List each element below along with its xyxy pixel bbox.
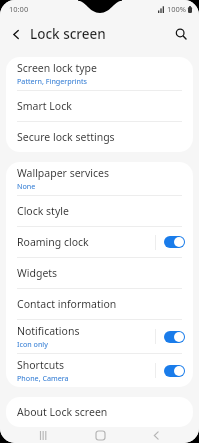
button[interactable]: Roaming clock bbox=[6, 227, 193, 257]
staticText: Widgets bbox=[17, 266, 58, 280]
button[interactable]: Search bbox=[169, 22, 193, 46]
button[interactable]: Wallpaper services bbox=[6, 162, 193, 195]
button[interactable]: Secure lock settings bbox=[6, 122, 193, 152]
button[interactable]: Back bbox=[143, 427, 169, 443]
staticText: Clock style bbox=[17, 204, 69, 218]
button[interactable]: Home bbox=[87, 427, 113, 443]
button[interactable]: Widgets bbox=[6, 258, 193, 288]
button[interactable]: Smart Lock bbox=[6, 91, 193, 121]
staticText: Notifications bbox=[17, 324, 80, 338]
staticText: Smart Lock bbox=[17, 99, 72, 113]
staticText: Secure lock settings bbox=[17, 130, 115, 144]
staticText: Lock screen bbox=[30, 25, 106, 43]
staticText: Shortcuts bbox=[17, 358, 65, 372]
staticText: 100% bbox=[167, 4, 187, 14]
button[interactable]: Contact information bbox=[6, 289, 193, 319]
button[interactable]: Recents bbox=[30, 427, 56, 443]
staticText: Contact information bbox=[17, 297, 117, 311]
staticText: Icon only bbox=[17, 339, 48, 349]
staticText: Pattern, Fingerprints bbox=[17, 76, 88, 86]
button[interactable]: Notifications bbox=[6, 320, 193, 353]
button[interactable]: Screen lock type bbox=[6, 57, 193, 90]
staticText: Wallpaper services bbox=[17, 166, 109, 180]
button[interactable]: Shortcuts switch bbox=[163, 364, 186, 378]
staticText: Phone, Camera bbox=[17, 373, 69, 383]
staticText: 10:00 bbox=[9, 4, 29, 14]
staticText: Roaming clock bbox=[17, 235, 89, 249]
button[interactable]: Notifications switch bbox=[163, 330, 186, 344]
button[interactable]: Clock style bbox=[6, 196, 193, 226]
staticText: None bbox=[17, 181, 36, 191]
button[interactable]: Shortcuts bbox=[6, 354, 193, 387]
staticText: Screen lock type bbox=[17, 61, 97, 75]
button[interactable]: Roaming clock switch bbox=[163, 235, 186, 249]
button[interactable]: Back bbox=[5, 23, 27, 45]
button[interactable]: About Lock screen bbox=[6, 397, 193, 427]
staticText: About Lock screen bbox=[17, 405, 108, 419]
